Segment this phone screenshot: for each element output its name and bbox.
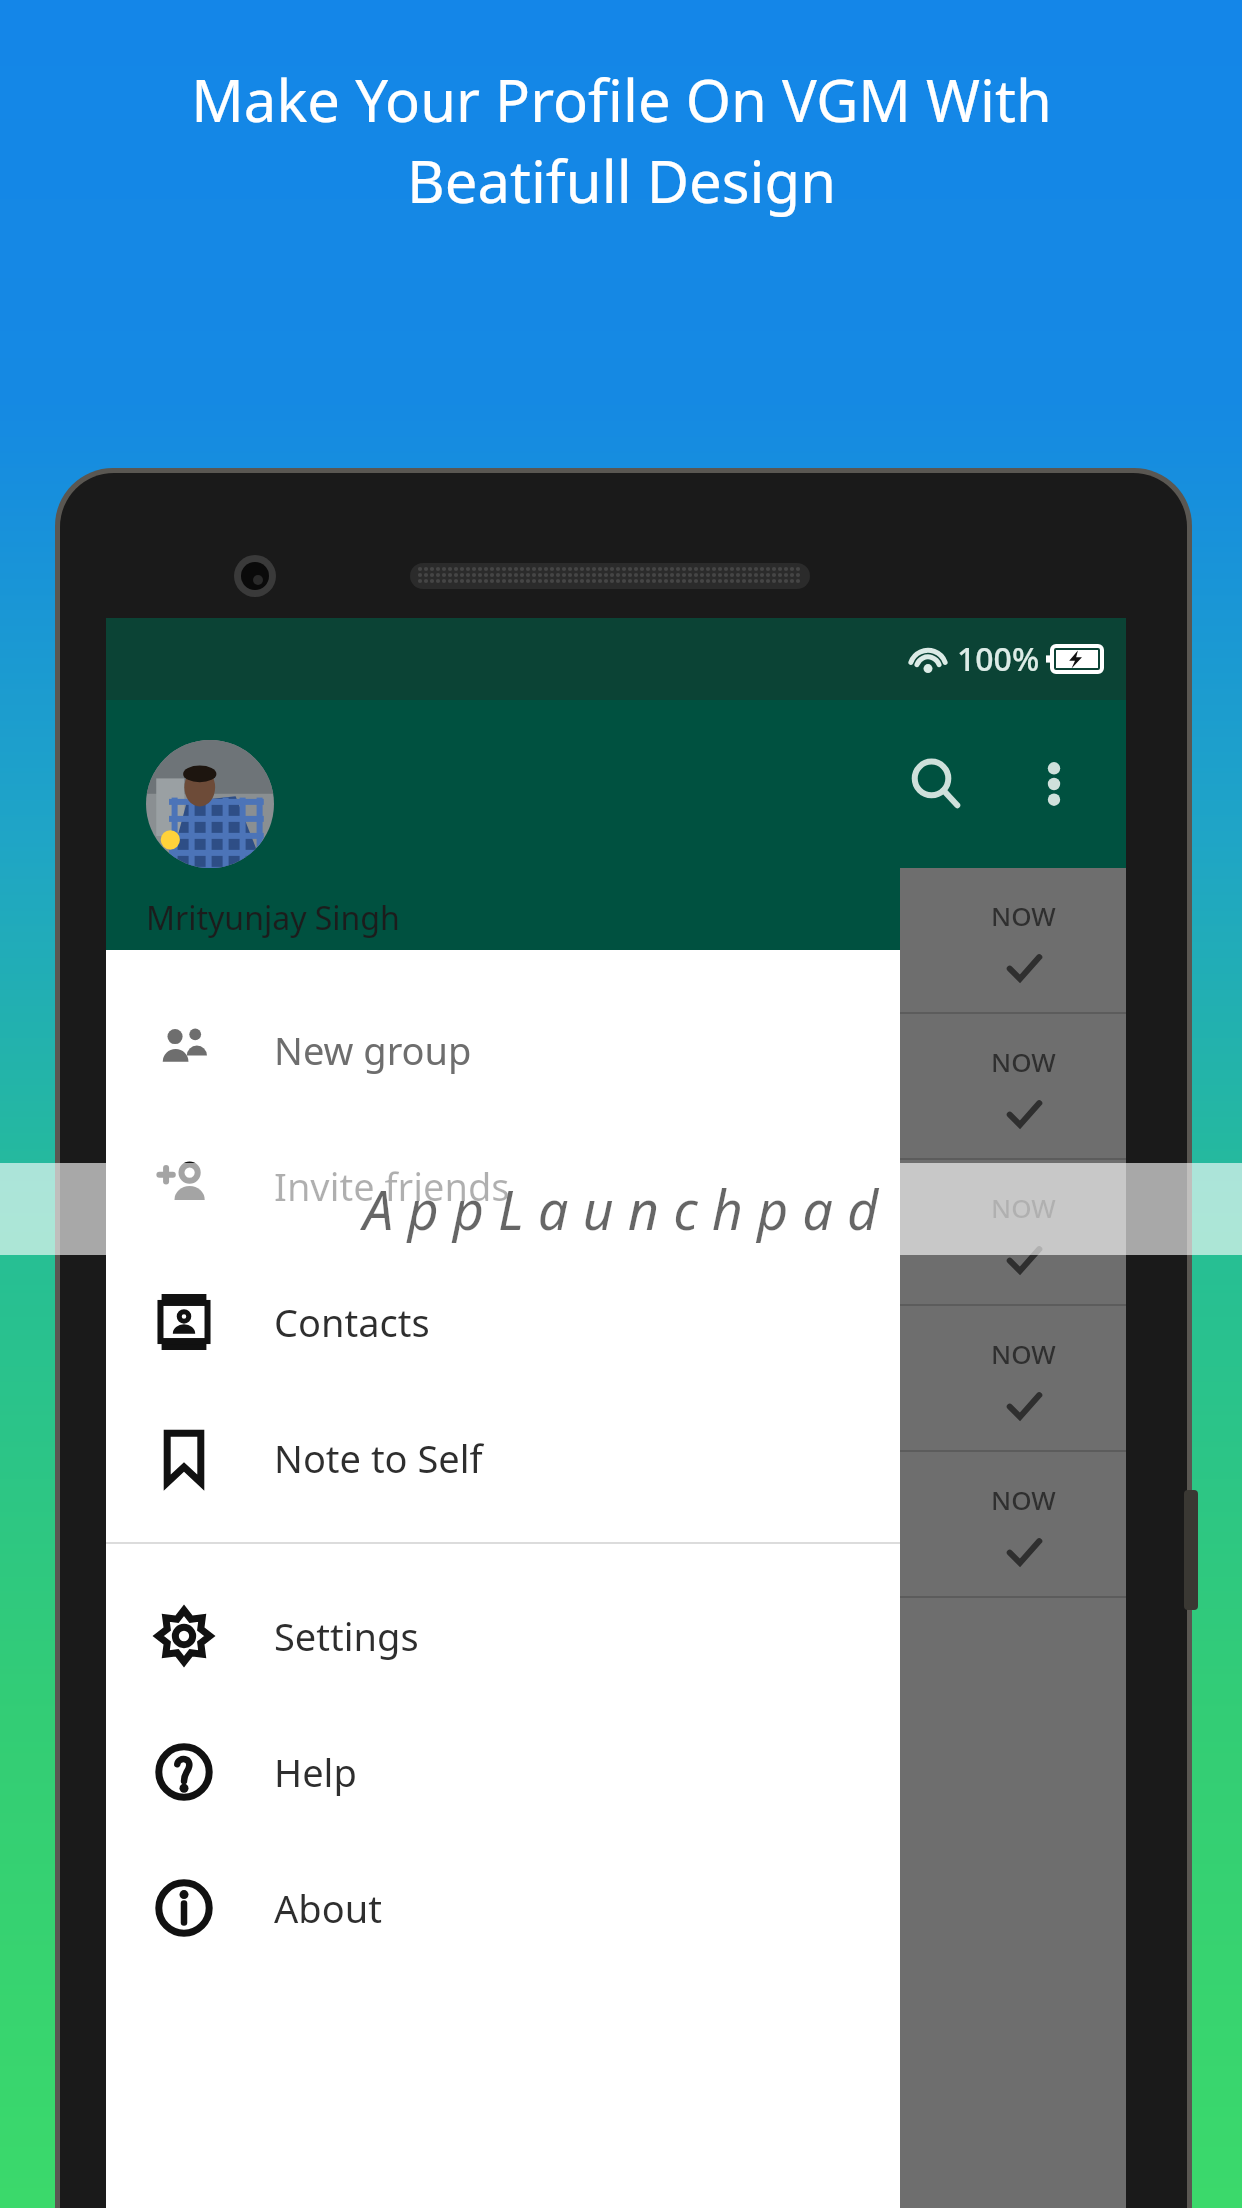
button[interactable]: Contacts bbox=[106, 1254, 900, 1390]
staticText: NOW bbox=[991, 1190, 1056, 1225]
staticText: NOW bbox=[991, 1044, 1056, 1079]
staticText: NOW bbox=[991, 1482, 1056, 1517]
button[interactable]: New group bbox=[106, 982, 900, 1118]
staticText: Note to Self bbox=[274, 1432, 483, 1484]
staticText: Mrityunjay Singh bbox=[146, 896, 400, 940]
button[interactable]: About bbox=[106, 1840, 900, 1976]
button[interactable]: Note to Self bbox=[106, 1390, 900, 1526]
staticText: NOW bbox=[991, 1336, 1056, 1371]
staticText: Settings bbox=[274, 1610, 419, 1662]
button[interactable]: Help bbox=[106, 1704, 900, 1840]
staticText: A p p L a u n c h p a d bbox=[363, 1172, 879, 1246]
button[interactable]: Settings bbox=[106, 1568, 900, 1704]
staticText: New group bbox=[274, 1024, 472, 1076]
staticText: Beatifull Design bbox=[407, 141, 836, 220]
staticText: Make Your Profile On VGM With bbox=[191, 60, 1052, 139]
staticText: 100% bbox=[957, 637, 1040, 681]
staticText: About bbox=[274, 1882, 382, 1934]
staticText: NOW bbox=[991, 898, 1056, 933]
button[interactable]: Search bbox=[888, 736, 984, 832]
button[interactable]: More options bbox=[1006, 736, 1102, 832]
button[interactable]: Invite friends bbox=[106, 1118, 900, 1254]
staticText: Invite friends bbox=[274, 1160, 510, 1212]
staticText: Contacts bbox=[274, 1296, 430, 1348]
staticText: Help bbox=[274, 1746, 357, 1798]
button[interactable]: Profile photo bbox=[146, 740, 274, 868]
